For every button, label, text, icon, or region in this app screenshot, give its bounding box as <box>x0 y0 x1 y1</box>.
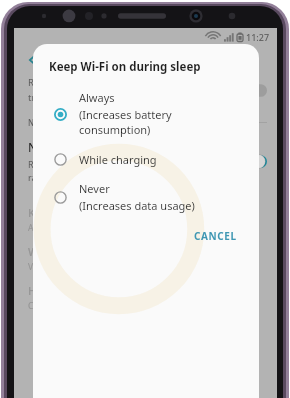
staticText: Hotspot 2.0 <box>28 283 89 298</box>
staticText: NETWORK SETTINGS <box>28 117 115 128</box>
staticText: Network notification <box>28 139 147 155</box>
button[interactable]: Never <box>49 181 245 213</box>
staticText: Reduce battery usage by analyzing Wi-Fi <box>28 76 208 89</box>
staticText: Connect automatically to <box>28 300 128 312</box>
staticText: Keep Wi-Fi on during sleep <box>28 205 168 220</box>
staticText: Never <box>79 181 110 196</box>
staticText: Keep Wi-Fi on during sleep <box>49 59 201 75</box>
button[interactable]: CANCEL <box>186 225 245 247</box>
staticText: Wi-Fi control history <box>28 244 134 259</box>
staticText: range are detected. <box>28 171 111 183</box>
staticText: Always <box>79 90 115 105</box>
staticText: (Increases data usage) <box>79 198 195 213</box>
staticText: ADVANCED <box>48 52 112 67</box>
staticText: 11:27 <box>246 31 270 43</box>
staticText: Receive notifications when open networks… <box>28 158 217 170</box>
staticText: traffic patterns. <box>28 91 97 104</box>
staticText: View apps that turned <box>28 261 116 273</box>
staticText: (Increases battery consumption) <box>79 107 245 137</box>
button[interactable]: Network notification <box>28 139 267 183</box>
staticText: While charging <box>79 152 157 167</box>
button[interactable]: While charging <box>49 148 245 170</box>
button[interactable]: Reduce battery usage toggle <box>237 83 267 98</box>
button[interactable]: Always <box>49 90 245 137</box>
staticText: Always <box>28 222 56 234</box>
button[interactable]: Back <box>22 50 42 70</box>
button[interactable]: Network notification toggle <box>237 154 267 169</box>
staticText: CANCEL <box>194 229 237 243</box>
